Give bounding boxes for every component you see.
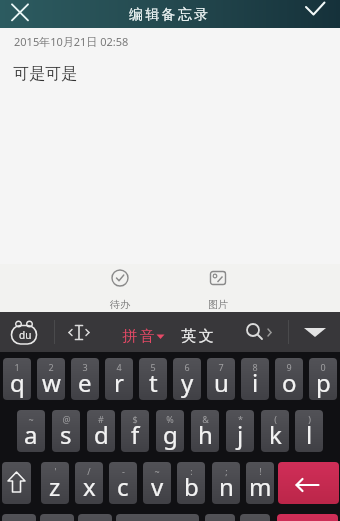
staticText: f [131,418,140,451]
staticText: du [19,328,32,342]
button[interactable]: ( [261,410,289,452]
staticText: / [87,465,91,477]
button[interactable]: 1 [3,358,31,400]
staticText: ; [225,465,228,477]
button[interactable]: 0 [309,358,337,400]
button[interactable]: 9 [275,358,303,400]
staticText: 图片 [208,298,228,311]
button[interactable] [205,514,235,521]
staticText: y [181,366,194,399]
staticText: ! [259,465,262,477]
staticText: $ [132,413,138,425]
button[interactable]: 2 [37,358,65,400]
button[interactable] [0,0,40,28]
staticText: r [114,366,124,399]
button[interactable]: ~ [143,462,171,504]
staticText: w [42,366,61,399]
button[interactable]: 5 [139,358,167,400]
staticText: m [249,470,272,503]
staticText: ) [308,413,311,425]
staticText: 编辑备忘录 [129,6,211,24]
staticText: q [10,366,25,399]
staticText: n [219,470,234,503]
staticText: 0 [320,361,326,373]
staticText: c [117,470,129,503]
staticText: @ [62,413,71,425]
staticText: a [24,418,38,451]
staticText: u [214,366,229,399]
staticText: 1 [14,361,20,373]
button[interactable]: - [109,462,137,504]
staticText: s [60,418,72,451]
button[interactable]: ' [41,462,69,504]
staticText: h [198,418,213,451]
staticText: 英文 [180,327,215,346]
button[interactable]: 8 [241,358,269,400]
button[interactable]: % [156,410,184,452]
button[interactable]: du [11,321,39,346]
button[interactable]: : [177,462,205,504]
button[interactable]: ) [295,410,323,452]
staticText: ~ [154,465,160,477]
staticText: k [269,418,282,451]
button[interactable] [66,318,92,346]
button[interactable] [278,462,339,504]
staticText: g [163,418,178,451]
staticText: - [122,465,125,477]
staticText: % [166,413,174,425]
button[interactable]: @ [52,410,80,452]
button[interactable]: # [87,410,115,452]
button[interactable]: 图片 [196,269,240,311]
button[interactable]: 3 [71,358,99,400]
staticText: ~ [28,413,34,425]
staticText: d [94,418,109,451]
staticText: 8 [252,361,258,373]
staticText: * [238,413,243,425]
button[interactable] [78,514,112,521]
staticText: l [306,418,313,451]
button[interactable]: * [226,410,254,452]
button[interactable]: 待办 [98,269,142,311]
button[interactable]: 拼音 [121,316,165,356]
button[interactable] [240,514,270,521]
button[interactable]: ; [212,462,240,504]
staticText: 拼音 [121,327,156,346]
staticText: 9 [286,361,292,373]
button[interactable] [116,514,199,521]
staticText: 7 [218,361,224,373]
button[interactable]: 英文 [180,316,215,356]
staticText: 5 [150,361,156,373]
staticText: i [252,366,259,399]
button[interactable]: $ [121,410,149,452]
button[interactable] [240,318,278,346]
staticText: & [202,413,209,425]
staticText: p [316,366,331,399]
staticText: j [237,418,244,451]
button[interactable] [296,318,336,346]
button[interactable]: ~ [17,410,45,452]
button[interactable] [2,462,31,504]
button[interactable] [2,514,36,521]
button[interactable] [300,0,340,28]
staticText: x [83,470,96,503]
staticText: : [190,465,193,477]
staticText: ( [274,413,277,425]
button[interactable]: & [191,410,219,452]
button[interactable]: / [75,462,103,504]
button[interactable]: 4 [105,358,133,400]
staticText: 6 [184,361,190,373]
staticText: 2 [48,361,54,373]
staticText: ' [54,465,57,477]
staticText: 2015年10月21日 02:58 [14,34,129,49]
staticText: # [98,413,104,425]
staticText: b [184,470,199,503]
staticText: 4 [116,361,122,373]
staticText: e [78,366,92,399]
button[interactable] [277,514,338,521]
button[interactable]: 6 [173,358,201,400]
button[interactable]: ! [246,462,274,504]
button[interactable] [40,514,74,521]
button[interactable]: 7 [207,358,235,400]
staticText: v [151,470,164,503]
staticText: o [282,366,297,399]
